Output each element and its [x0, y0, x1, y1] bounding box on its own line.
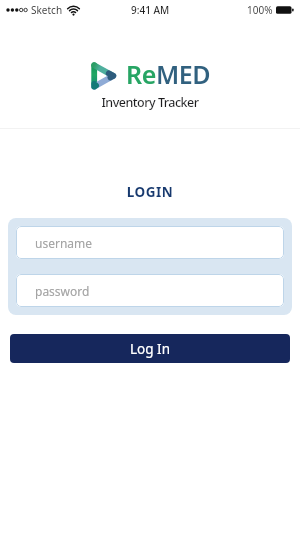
- staticText: Inventory Tracker: [0, 94, 300, 111]
- staticText: username: [35, 235, 93, 251]
- staticText: Sketch: [31, 3, 63, 17]
- staticText: 100%: [247, 3, 273, 17]
- staticText: ReMED: [126, 57, 211, 85]
- button[interactable]: username: [16, 226, 284, 259]
- staticText: password: [35, 283, 90, 299]
- staticText: LOGIN: [0, 183, 300, 201]
- button[interactable]: password: [16, 274, 284, 307]
- staticText: 9:41 AM: [131, 3, 170, 17]
- staticText: Log In: [130, 340, 170, 358]
- button[interactable]: Log In: [10, 334, 290, 363]
